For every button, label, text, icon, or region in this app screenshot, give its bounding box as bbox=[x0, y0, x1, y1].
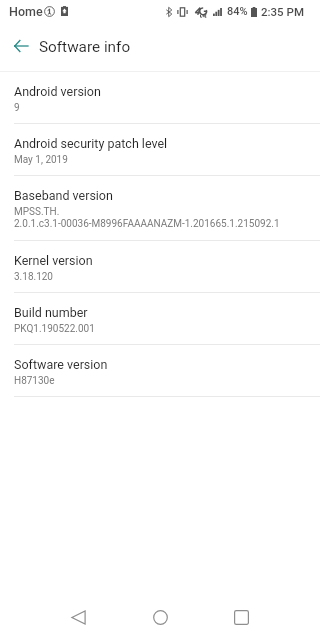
staticText: MPSS.TH. bbox=[14, 206, 60, 218]
staticText: Android security patch level bbox=[14, 136, 168, 151]
button[interactable]: Software version bbox=[0, 345, 320, 397]
staticText: Kernel version bbox=[14, 253, 93, 268]
staticText: May 1, 2019 bbox=[14, 154, 68, 166]
staticText: Software info bbox=[39, 38, 131, 56]
button[interactable]: Kernel version bbox=[0, 241, 320, 293]
button[interactable]: Baseband version bbox=[0, 176, 320, 241]
staticText: 9 bbox=[14, 102, 20, 114]
staticText: 84% bbox=[227, 5, 248, 18]
staticText: 2.0.1.c3.1-00036-M8996FAAAANAZM-1.201665… bbox=[14, 218, 280, 230]
staticText: Android version bbox=[14, 84, 101, 99]
staticText: 3.18.120 bbox=[14, 271, 53, 283]
button[interactable]: Recent apps bbox=[218, 594, 264, 640]
staticText: PKQ1.190522.001 bbox=[14, 323, 95, 335]
button[interactable]: Navigate up bbox=[0, 22, 38, 72]
staticText: Home bbox=[9, 4, 43, 19]
staticText: Build number bbox=[14, 305, 88, 320]
staticText: H87130e bbox=[14, 375, 55, 387]
staticText: Baseband version bbox=[14, 188, 113, 203]
button[interactable]: Back bbox=[55, 594, 101, 640]
staticText: 2:35 PM bbox=[261, 5, 304, 18]
button[interactable]: Build number bbox=[0, 293, 320, 345]
button[interactable]: Android security patch level bbox=[0, 124, 320, 176]
button[interactable]: Android version bbox=[0, 72, 320, 124]
button[interactable]: Home bbox=[137, 594, 183, 640]
staticText: Software version bbox=[14, 357, 108, 372]
